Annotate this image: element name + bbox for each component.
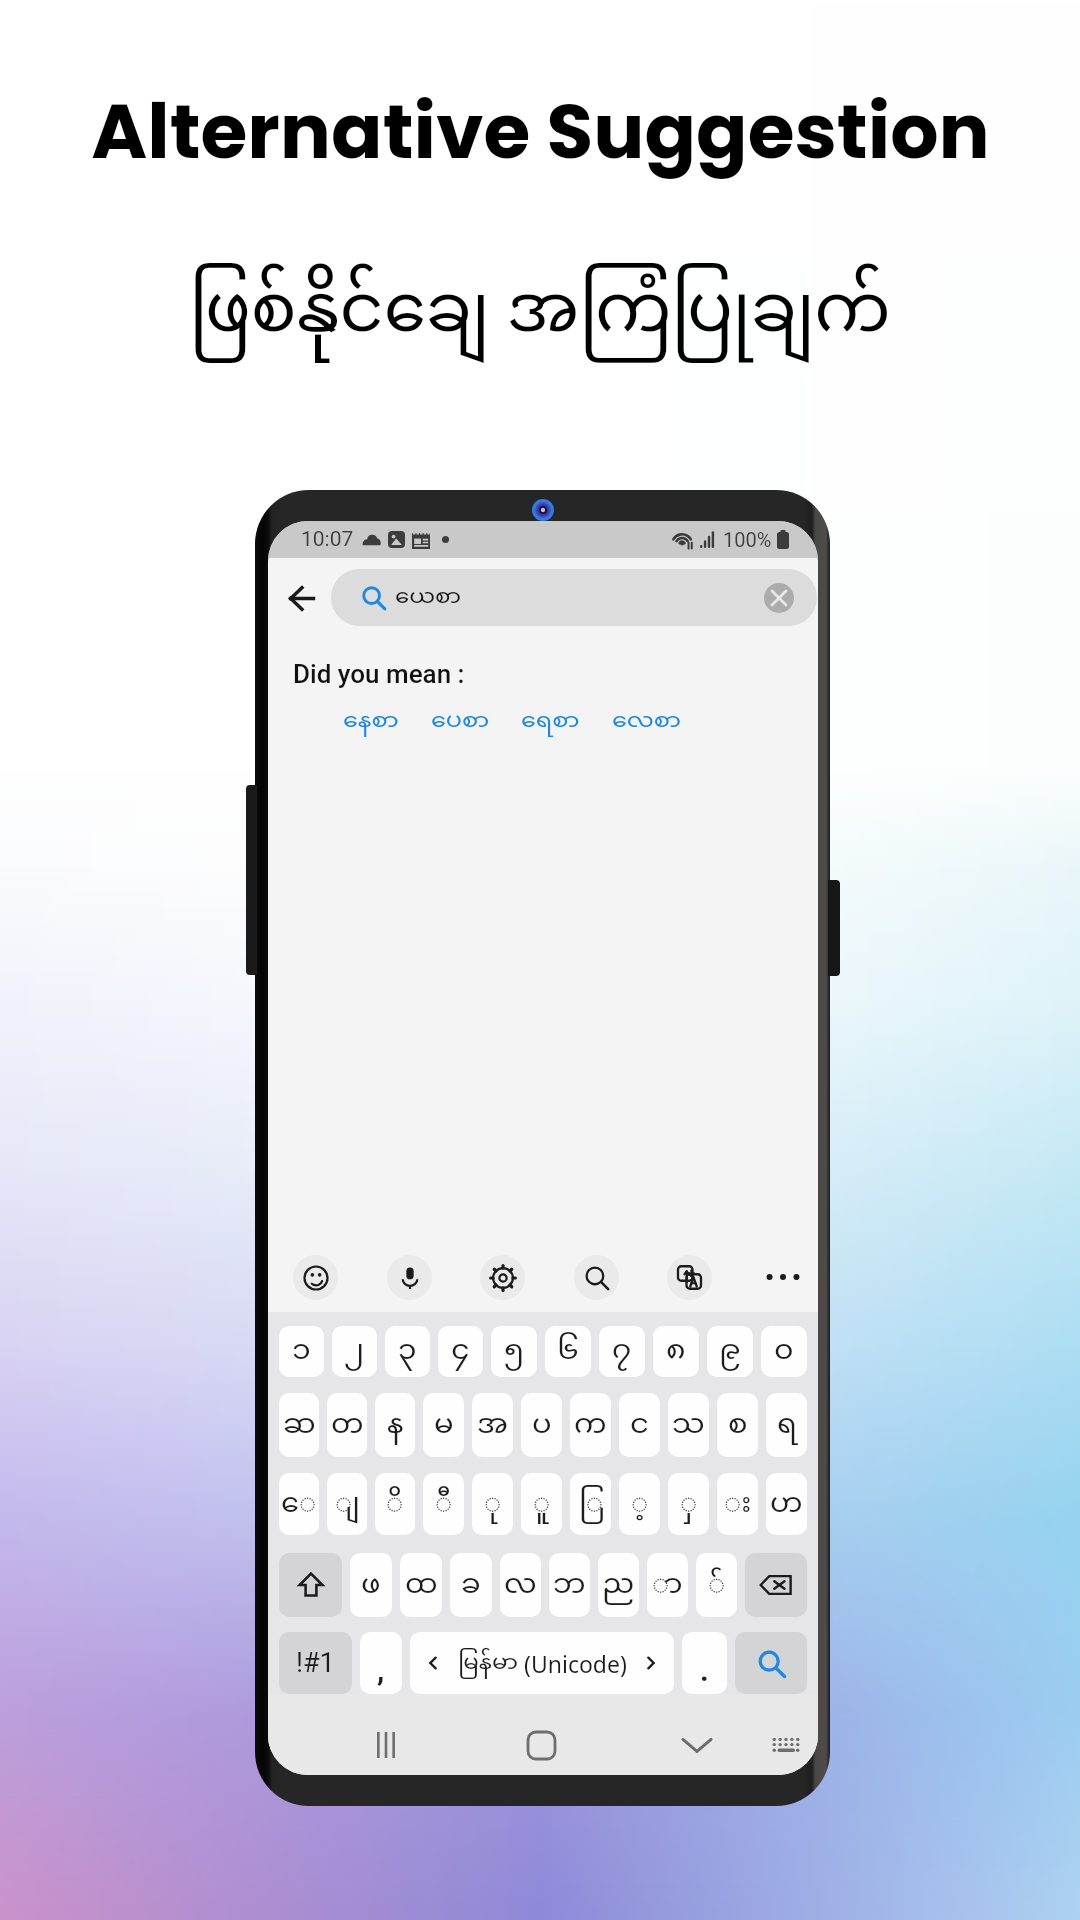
staticText: စ bbox=[728, 1406, 748, 1445]
button[interactable]: ဘ bbox=[549, 1553, 590, 1617]
button[interactable]: ် bbox=[696, 1553, 737, 1617]
staticText: န bbox=[387, 1406, 404, 1445]
staticText: း bbox=[724, 1485, 752, 1524]
button[interactable]: ၇ bbox=[599, 1326, 645, 1377]
staticText: ဟ bbox=[770, 1485, 803, 1524]
staticText: ၁ bbox=[292, 1331, 311, 1372]
button[interactable]: ိ bbox=[375, 1473, 415, 1535]
button[interactable]: မြန်မာ (Unicode) bbox=[410, 1632, 674, 1694]
button[interactable]: !#1 bbox=[279, 1632, 352, 1694]
staticText: ၇ bbox=[612, 1331, 632, 1372]
button[interactable]: ရ bbox=[766, 1393, 807, 1457]
button[interactable]: Backspace bbox=[745, 1553, 807, 1617]
staticText: ၀ bbox=[774, 1331, 794, 1372]
button[interactable]: ၃ bbox=[385, 1326, 430, 1377]
staticText: င bbox=[630, 1406, 649, 1445]
button[interactable]: ပေစာ bbox=[431, 705, 490, 738]
button[interactable]: ဟ bbox=[766, 1473, 807, 1535]
button[interactable]: ူ bbox=[521, 1473, 562, 1535]
button[interactable]: ထ bbox=[400, 1553, 442, 1617]
button[interactable]: ၄ bbox=[438, 1326, 483, 1377]
button[interactable]: ီ bbox=[423, 1473, 464, 1535]
button[interactable]: ့ bbox=[619, 1473, 660, 1535]
staticText: ဆ bbox=[283, 1406, 316, 1445]
staticText: ၂ bbox=[344, 1331, 365, 1372]
button[interactable]: ၁ bbox=[279, 1326, 324, 1377]
button[interactable]: နေစာ bbox=[343, 705, 399, 738]
staticText: ည bbox=[602, 1566, 635, 1605]
staticText: ၃ bbox=[398, 1331, 417, 1372]
button[interactable]: Home bbox=[517, 1721, 565, 1769]
button[interactable]: င bbox=[619, 1393, 660, 1457]
button[interactable]: Hide keyboard bbox=[673, 1721, 721, 1769]
button[interactable]: ေ bbox=[279, 1473, 319, 1535]
staticText: ဘ bbox=[553, 1566, 586, 1605]
button[interactable]: ု bbox=[472, 1473, 513, 1535]
button[interactable]: ၅ bbox=[491, 1326, 537, 1377]
button[interactable]: Back bbox=[275, 572, 327, 624]
button[interactable]: က bbox=[570, 1393, 611, 1457]
button[interactable]: ာ bbox=[647, 1553, 688, 1617]
button[interactable]: ၈ bbox=[653, 1326, 699, 1377]
button[interactable]: Clear search bbox=[764, 583, 794, 613]
button[interactable]: Keyboard layout bbox=[762, 1721, 810, 1769]
staticText: ပ bbox=[532, 1406, 552, 1445]
staticText: ေ bbox=[281, 1485, 317, 1524]
staticText: နေစာ bbox=[343, 705, 399, 738]
button[interactable]: ှ bbox=[668, 1473, 709, 1535]
staticText: မြန်မာ (Unicode) bbox=[458, 1648, 627, 1679]
button[interactable]: ဖ bbox=[350, 1553, 392, 1617]
button[interactable]: Settings bbox=[480, 1255, 525, 1300]
button[interactable]: သ bbox=[668, 1393, 709, 1457]
staticText: ာ bbox=[652, 1566, 683, 1605]
button[interactable]: လ bbox=[500, 1553, 541, 1617]
staticText: ြ bbox=[579, 1485, 603, 1524]
button[interactable]: , bbox=[360, 1632, 402, 1694]
staticText: သ bbox=[672, 1406, 705, 1445]
button[interactable]: Search bbox=[735, 1632, 807, 1694]
button[interactable]: ၂ bbox=[332, 1326, 377, 1377]
staticText: ၅ bbox=[504, 1331, 525, 1372]
staticText: Alternative Suggestion bbox=[91, 78, 990, 184]
button[interactable]: More options bbox=[761, 1255, 805, 1299]
button[interactable]: ၉ bbox=[707, 1326, 753, 1377]
staticText: ပေစာ bbox=[431, 705, 490, 738]
staticText: အ bbox=[477, 1406, 508, 1445]
staticText: ျ bbox=[335, 1485, 360, 1524]
staticText: ှ bbox=[680, 1485, 698, 1524]
button[interactable]: လေစာ bbox=[612, 705, 682, 738]
button[interactable]: ျ bbox=[327, 1473, 367, 1535]
button[interactable]: ၆ bbox=[545, 1326, 591, 1377]
button[interactable]: ပ bbox=[521, 1393, 562, 1457]
staticText: တ bbox=[331, 1406, 364, 1445]
button[interactable]: ယေစာ bbox=[331, 569, 817, 626]
staticText: ဖ bbox=[361, 1566, 381, 1605]
staticText: , bbox=[377, 1653, 385, 1688]
button[interactable]: Voice input bbox=[387, 1255, 432, 1300]
button[interactable]: ခ bbox=[450, 1553, 492, 1617]
staticText: ရေစာ bbox=[521, 705, 580, 738]
button[interactable]: ၀ bbox=[761, 1326, 807, 1377]
button[interactable]: . bbox=[682, 1632, 727, 1694]
button[interactable]: တ bbox=[327, 1393, 367, 1457]
staticText: !#1 bbox=[296, 1647, 335, 1679]
button[interactable]: Recent apps bbox=[362, 1721, 410, 1769]
button[interactable]: ြ bbox=[570, 1473, 611, 1535]
button[interactable]: ဆ bbox=[279, 1393, 319, 1457]
staticText: မ bbox=[434, 1406, 454, 1445]
button[interactable]: န bbox=[375, 1393, 415, 1457]
staticText: . bbox=[700, 1653, 709, 1688]
button[interactable]: Translate bbox=[667, 1255, 712, 1300]
button[interactable]: စ bbox=[717, 1393, 758, 1457]
button[interactable]: Shift bbox=[279, 1553, 342, 1617]
button[interactable]: မ bbox=[423, 1393, 464, 1457]
button[interactable]: Search bbox=[574, 1255, 619, 1300]
button[interactable]: ည bbox=[598, 1553, 639, 1617]
staticText: ယေစာ bbox=[395, 582, 462, 613]
button[interactable]: အ bbox=[472, 1393, 513, 1457]
staticText: 10:07 bbox=[301, 527, 354, 552]
staticText: က bbox=[574, 1406, 607, 1445]
button[interactable]: Emoji bbox=[293, 1255, 338, 1300]
button[interactable]: း bbox=[717, 1473, 758, 1535]
button[interactable]: ရေစာ bbox=[521, 705, 580, 738]
